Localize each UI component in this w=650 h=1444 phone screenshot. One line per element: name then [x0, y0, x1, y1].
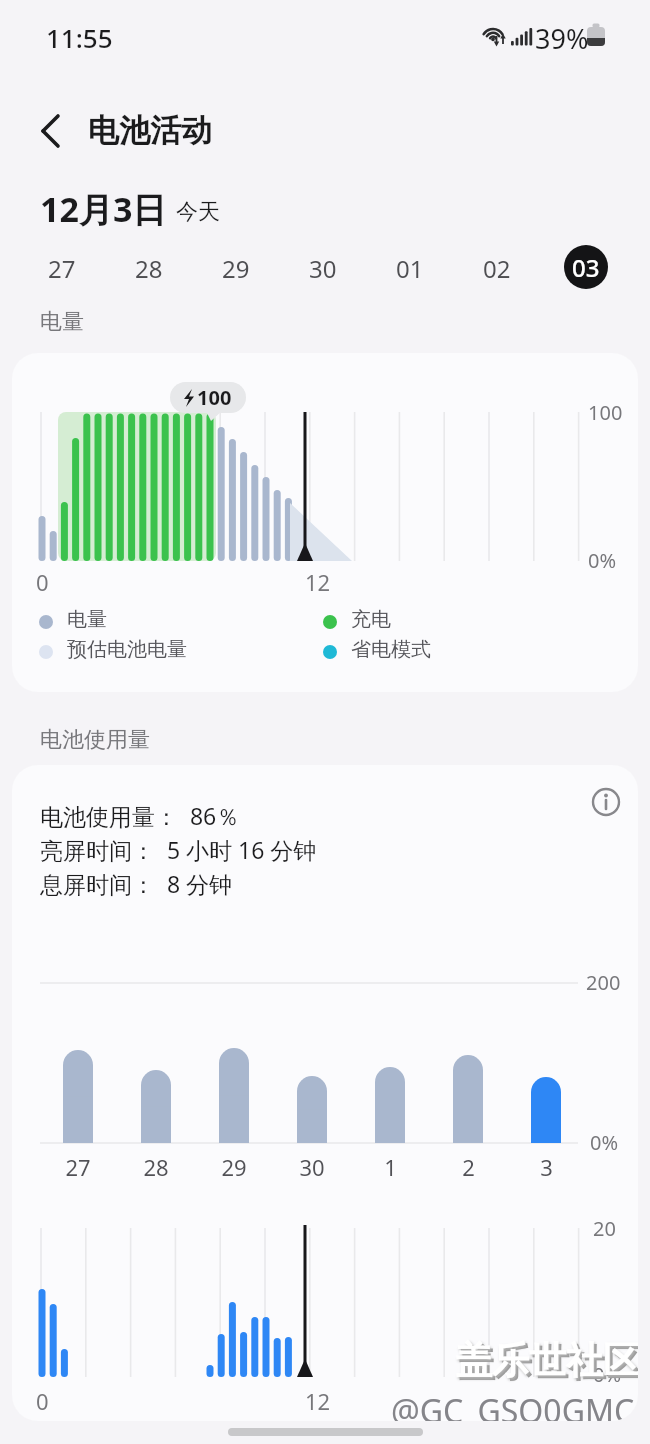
staticText: 电量 [67, 607, 107, 632]
staticText: 02 [483, 252, 511, 285]
staticText: 20 [593, 1215, 616, 1242]
button[interactable] [28, 106, 76, 154]
staticText: 12月3日 [40, 186, 167, 232]
staticText: 2 [462, 1152, 475, 1182]
staticText: 28 [143, 1152, 169, 1182]
staticText: 亮屏时间： 5 小时 16 分钟 [40, 834, 317, 865]
staticText: 0% [593, 1361, 622, 1388]
staticText: 27 [65, 1152, 91, 1182]
staticText: 29 [222, 252, 250, 285]
staticText: 今天 [176, 198, 220, 226]
button[interactable]: 30 [293, 246, 353, 290]
staticText: 29 [221, 1152, 247, 1182]
button[interactable]: 27 [32, 246, 92, 290]
staticText: 3 [540, 1152, 553, 1182]
staticText: 息屏时间： 8 分钟 [40, 868, 233, 899]
staticText: 30 [299, 1152, 325, 1182]
button[interactable]: 03 [564, 245, 608, 289]
staticText: 39% [535, 20, 589, 57]
staticText: 0 [36, 1386, 49, 1416]
staticText: 01 [396, 252, 424, 285]
staticText: 盖乐世社区 [455, 1337, 638, 1384]
button[interactable]: 29 [206, 246, 266, 290]
button[interactable]: 01 [380, 246, 440, 290]
staticText: 28 [135, 252, 163, 285]
staticText: 03 [572, 251, 600, 284]
staticText: 充电 [351, 607, 391, 632]
staticText: 27 [48, 252, 76, 285]
staticText: 电池使用量： 86％ [40, 800, 240, 831]
staticText: 100 [588, 399, 623, 426]
staticText: 盖乐世社区 [458, 1340, 638, 1387]
staticText: 30 [309, 252, 337, 285]
button[interactable]: 02 [467, 246, 527, 290]
staticText: 12 [305, 567, 331, 597]
staticText: 200 [586, 969, 621, 996]
staticText: 省电模式 [351, 637, 431, 662]
staticText: 11:55 [46, 20, 113, 55]
staticText: 100 [197, 384, 232, 411]
staticText: 电量 [40, 308, 84, 336]
staticText: 0% [590, 1129, 619, 1156]
button[interactable] [588, 784, 624, 820]
button[interactable]: 28 [119, 246, 179, 290]
staticText: 预估电池电量 [67, 637, 187, 662]
staticText: 12 [305, 1386, 331, 1416]
staticText: 0 [36, 567, 49, 597]
staticText: @GC_GSO0GMC [391, 1389, 635, 1421]
staticText: 电池活动 [88, 111, 212, 150]
staticText: 1 [384, 1152, 397, 1182]
staticText: 0% [588, 547, 617, 574]
staticText: 电池使用量 [40, 726, 150, 754]
